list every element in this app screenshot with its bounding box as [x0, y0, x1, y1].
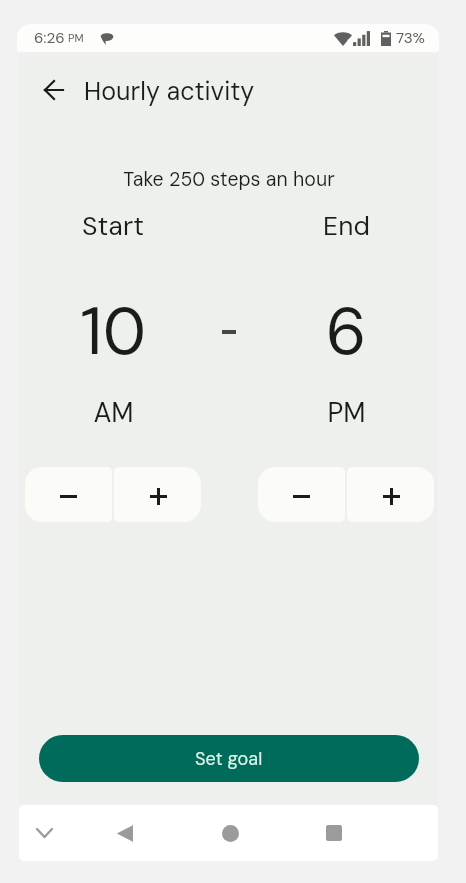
staticText: Start: [82, 209, 144, 244]
button[interactable]: Back: [29, 66, 77, 114]
staticText: 6: [325, 289, 367, 375]
staticText: Hourly activity: [84, 75, 255, 108]
staticText: PM: [327, 395, 366, 430]
button[interactable]: Set goal: [39, 735, 419, 782]
button[interactable]: Recents: [306, 805, 362, 861]
staticText: 73%: [396, 28, 425, 48]
button[interactable]: Home: [202, 805, 258, 861]
staticText: Set goal: [195, 747, 263, 770]
button[interactable]: Hide keyboard: [16, 805, 72, 861]
button[interactable]: Increase: [347, 467, 434, 522]
staticText: End: [323, 209, 370, 244]
staticText: AM: [93, 395, 134, 430]
staticText: 6:26: [34, 28, 65, 48]
button[interactable]: Decrease: [25, 467, 112, 522]
button[interactable]: Back: [96, 805, 152, 861]
staticText: 10: [80, 289, 146, 375]
button[interactable]: Increase: [114, 467, 201, 522]
staticText: PM: [68, 31, 84, 45]
staticText: Take 250 steps an hour: [123, 167, 335, 192]
button[interactable]: Decrease: [258, 467, 345, 522]
